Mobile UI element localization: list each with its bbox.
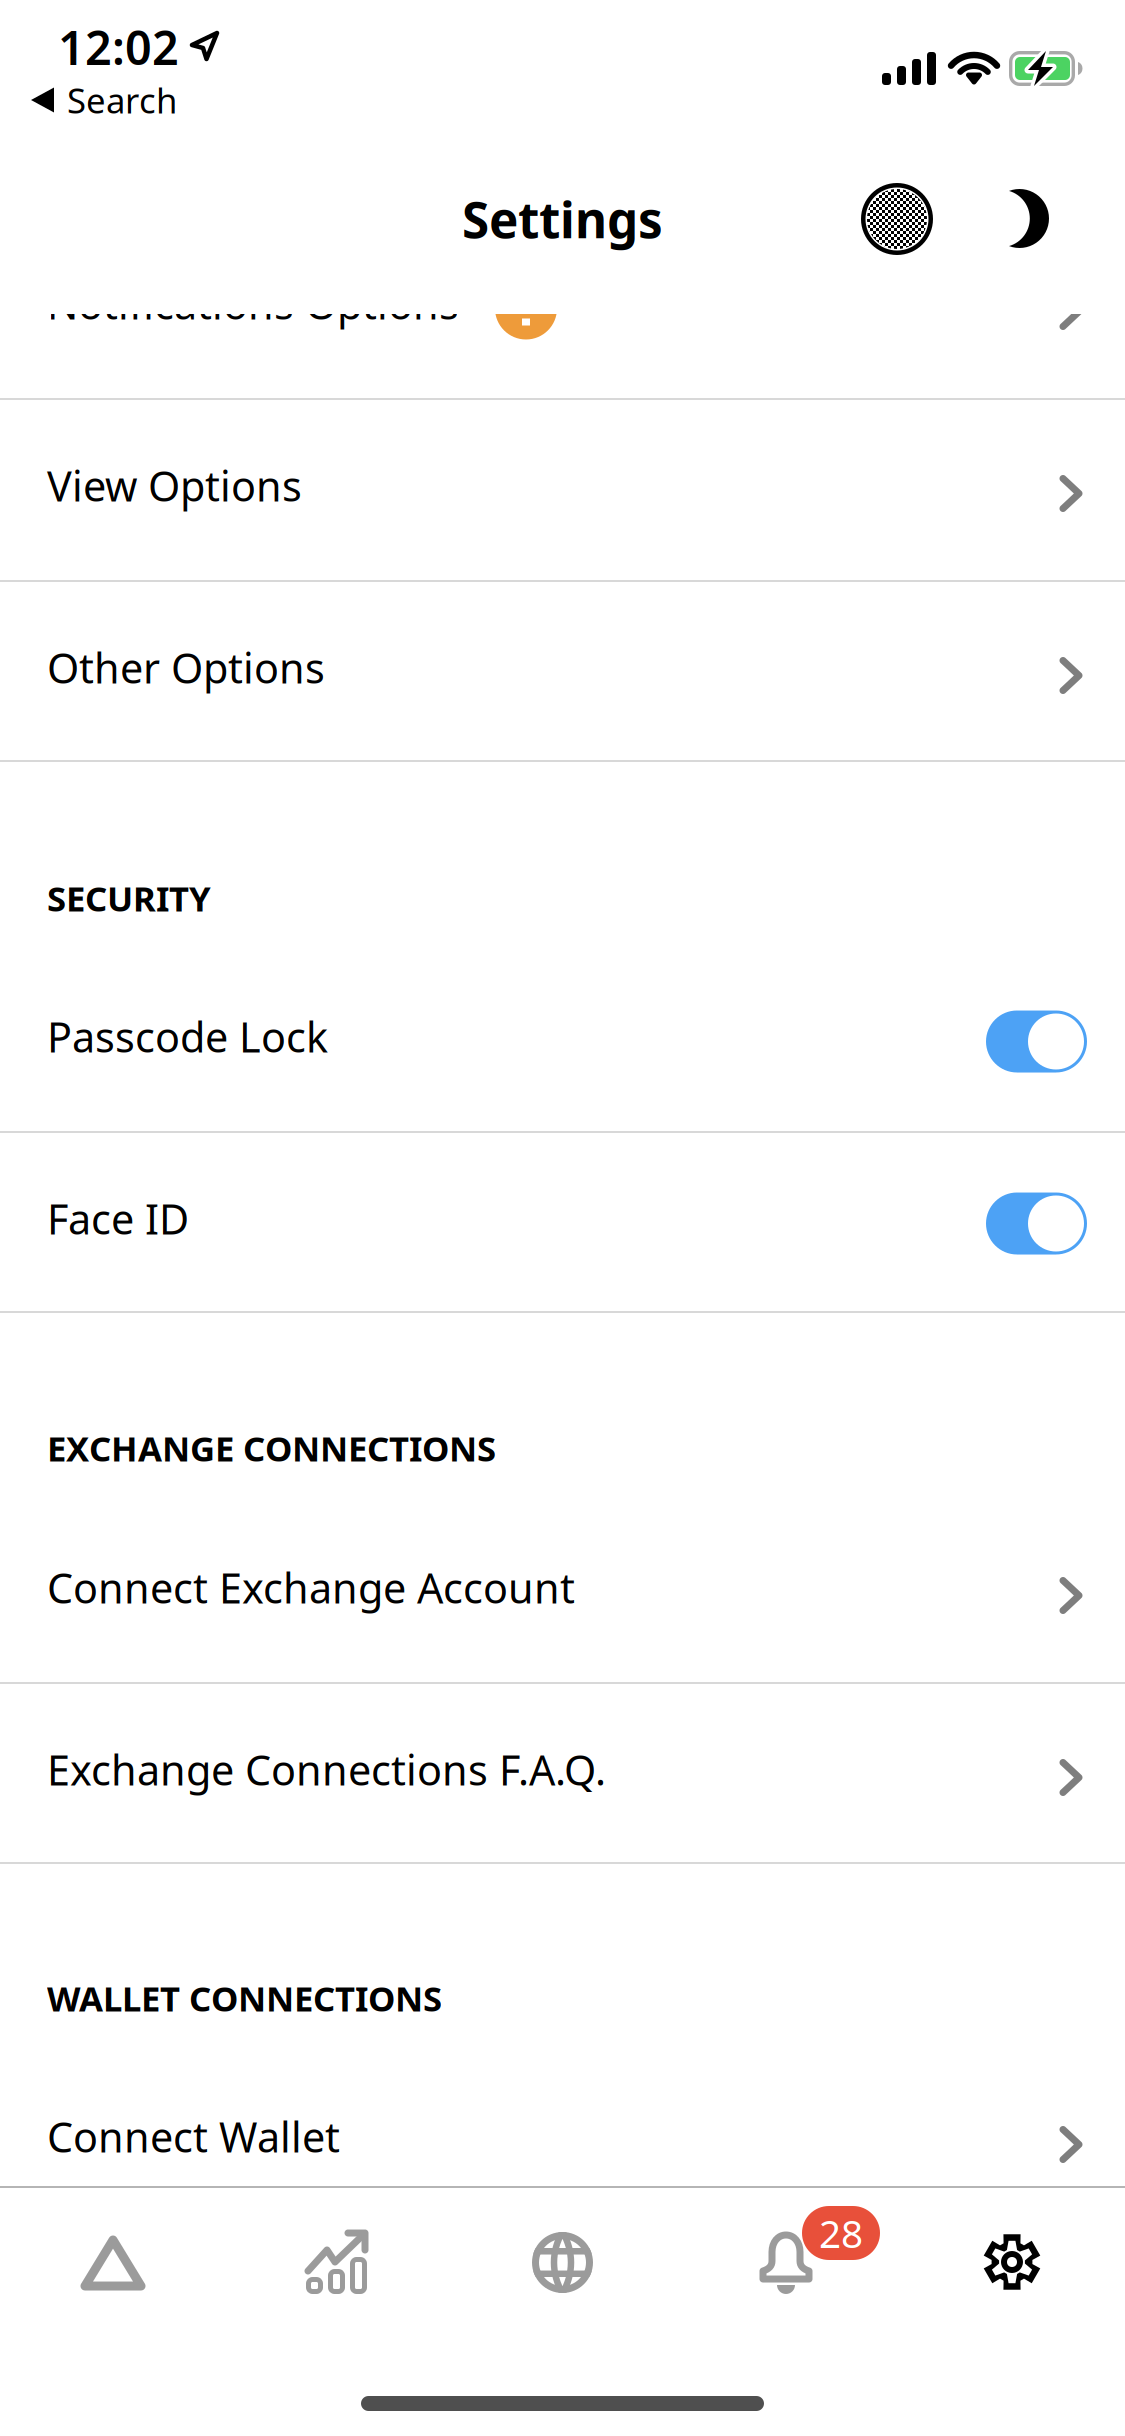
staticText: Other Options bbox=[47, 640, 325, 695]
staticText: EXCHANGE CONNECTIONS bbox=[47, 1425, 496, 1471]
button[interactable]: Settings bbox=[900, 2196, 1124, 2328]
staticText: Connect Wallet bbox=[47, 2109, 340, 2164]
staticText: WALLET CONNECTIONS bbox=[47, 1975, 442, 2021]
button[interactable]: Face ID bbox=[0, 1133, 1125, 1314]
button[interactable]: Notifications Options bbox=[0, 314, 1125, 495]
staticText: Exchange Connections F.A.Q. bbox=[47, 1742, 606, 1797]
staticText: Connect Exchange Account bbox=[47, 1560, 575, 1615]
button[interactable]: Performance bbox=[225, 2196, 449, 2330]
button[interactable]: Connect Exchange Account bbox=[0, 1502, 1125, 1683]
button[interactable]: Markets bbox=[1, 2197, 225, 2329]
staticText: Search bbox=[67, 77, 177, 123]
staticText: 28 bbox=[819, 2207, 863, 2259]
button[interactable]: Dark mode bbox=[995, 175, 1064, 262]
staticText: Passcode Lock bbox=[47, 1009, 328, 1064]
staticText: Face ID bbox=[47, 1191, 189, 1246]
staticText: Notifications Options bbox=[47, 276, 459, 331]
button[interactable]: Exchange Connections F.A.Q. bbox=[0, 1684, 1125, 1865]
button[interactable]: View Options bbox=[0, 400, 1125, 581]
button[interactable]: Alerts, 28 new bbox=[675, 2186, 900, 2312]
button[interactable]: Search bbox=[0, 78, 1125, 122]
button[interactable]: Connect Wallet bbox=[0, 2051, 1125, 2232]
button[interactable]: Other Options bbox=[0, 582, 1125, 763]
staticText: SECURITY bbox=[47, 875, 211, 921]
button[interactable]: Display appearance bbox=[847, 169, 947, 269]
button[interactable]: Passcode Lock bbox=[0, 951, 1125, 1132]
button[interactable]: Explore bbox=[450, 2196, 675, 2329]
staticText: View Options bbox=[47, 458, 302, 513]
staticText: 12:02 bbox=[58, 16, 179, 78]
staticText: Settings bbox=[462, 186, 663, 252]
